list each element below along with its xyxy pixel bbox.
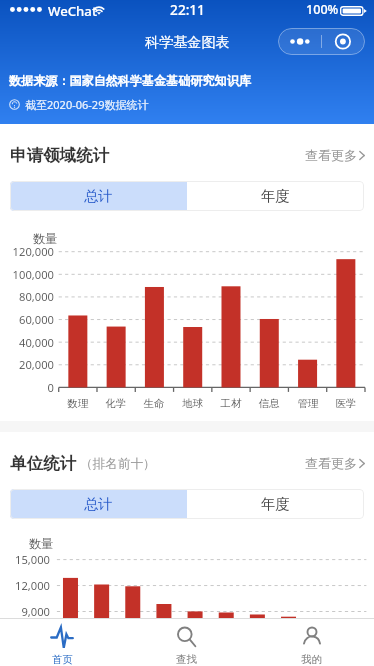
staticText: 我的 bbox=[301, 653, 322, 666]
staticText: 生命 bbox=[136, 397, 172, 410]
button[interactable]: Close mini program bbox=[321, 28, 365, 55]
staticText: 总计 bbox=[84, 187, 113, 205]
staticText: WeChat bbox=[48, 2, 97, 20]
staticText: 80,000 bbox=[0, 289, 54, 304]
staticText: 地球 bbox=[175, 397, 211, 410]
staticText: 化学 bbox=[98, 397, 134, 410]
staticText: 数理 bbox=[60, 397, 96, 410]
staticText: 总计 bbox=[84, 495, 113, 513]
staticText: 单位统计 bbox=[10, 453, 76, 474]
button[interactable]: 年度 bbox=[187, 181, 364, 211]
staticText: 9,000 bbox=[0, 604, 50, 619]
button[interactable]: 查看更多 bbox=[305, 147, 365, 163]
staticText: 截至2020-06-29数据统计 bbox=[25, 97, 149, 112]
button[interactable]: 总计 bbox=[10, 489, 187, 519]
staticText: 12,000 bbox=[0, 578, 50, 593]
staticText: 120,000 bbox=[0, 244, 54, 259]
button[interactable]: 首页 bbox=[0, 619, 124, 666]
staticText: 医学 bbox=[328, 397, 364, 410]
staticText: 0 bbox=[0, 380, 54, 395]
staticText: 工材 bbox=[213, 397, 249, 410]
staticText: 查找 bbox=[176, 653, 197, 666]
staticText: 首页 bbox=[52, 653, 73, 666]
staticText: 40,000 bbox=[0, 335, 54, 350]
staticText: 数量 bbox=[29, 536, 54, 551]
staticText: 15,000 bbox=[0, 552, 50, 567]
button[interactable]: More options bbox=[278, 28, 321, 55]
staticText: 科学基金图表 bbox=[145, 33, 230, 51]
button[interactable]: 我的 bbox=[249, 619, 374, 666]
staticText: 数据来源：国家自然科学基金基础研究知识库 bbox=[9, 73, 251, 88]
button[interactable]: 查找 bbox=[124, 619, 249, 666]
staticText: 100,000 bbox=[0, 267, 54, 282]
staticText: 查看更多 bbox=[305, 455, 357, 471]
staticText: 年度 bbox=[261, 495, 290, 513]
staticText: 年度 bbox=[261, 187, 290, 205]
button[interactable]: 查看更多 bbox=[305, 455, 365, 471]
staticText: 管理 bbox=[290, 397, 326, 410]
staticText: （排名前十） bbox=[80, 456, 156, 472]
button[interactable]: 总计 bbox=[10, 181, 187, 211]
staticText: 22:11 bbox=[167, 0, 208, 19]
staticText: 20,000 bbox=[0, 357, 54, 372]
staticText: 信息 bbox=[251, 397, 287, 410]
staticText: 数量 bbox=[33, 231, 58, 246]
staticText: 查看更多 bbox=[305, 147, 357, 163]
staticText: 100% bbox=[306, 1, 339, 18]
staticText: 60,000 bbox=[0, 312, 54, 327]
staticText: 申请领域统计 bbox=[10, 145, 109, 166]
button[interactable]: 年度 bbox=[187, 489, 364, 519]
